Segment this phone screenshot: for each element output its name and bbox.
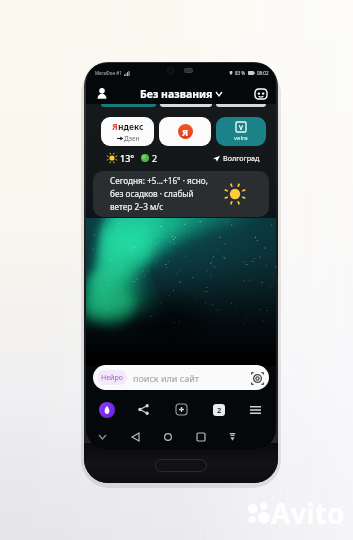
button[interactable]: Yandex: [159, 117, 211, 146]
staticText: МегаФон #1: [95, 70, 122, 76]
staticText: 2: [217, 405, 222, 415]
staticText: Сегодня: +5...+16° · ясно, без осадков ·…: [110, 175, 208, 213]
staticText: 83 %: [235, 70, 246, 76]
button[interactable]: Home: [160, 429, 175, 444]
button[interactable]: Visual search: [249, 370, 265, 386]
staticText: Волгоград: [223, 153, 260, 163]
button[interactable]: Сегодня: +5...+16° · ясно, без осадков ·…: [93, 171, 269, 217]
staticText: Нейро: [101, 373, 123, 383]
staticText: 08:02: [257, 70, 269, 76]
button[interactable]: Menu: [246, 400, 265, 419]
staticText: Без названия: [140, 87, 213, 101]
button[interactable]: Нейро: [93, 365, 269, 390]
button[interactable]: Collapse: [95, 429, 110, 444]
button[interactable]: Я: [101, 117, 154, 146]
staticText: Я: [112, 121, 118, 133]
button[interactable]: Alice assistant: [97, 400, 116, 419]
staticText: 13°: [120, 152, 135, 164]
button[interactable]: Incognito mode: [252, 85, 269, 102]
button[interactable]: Tabs: 2: [209, 400, 228, 419]
staticText: поиск или сайт: [133, 372, 199, 384]
button[interactable]: V: [216, 117, 266, 146]
button[interactable]: Recent apps: [193, 429, 208, 444]
button[interactable]: New tab: [172, 400, 191, 419]
staticText: Avito: [271, 494, 345, 532]
staticText: ндекс: [118, 121, 144, 133]
staticText: 2: [152, 152, 158, 164]
staticText: Дзен: [124, 134, 140, 143]
staticText: V: [239, 123, 243, 132]
staticText: velra: [234, 134, 248, 142]
button[interactable]: Profile: [93, 85, 110, 102]
button[interactable]: Share: [134, 400, 153, 419]
button[interactable]: Downloads: [225, 429, 240, 444]
button[interactable]: Без названия: [110, 87, 252, 101]
button[interactable]: Back: [128, 429, 143, 444]
staticText: Я: [182, 126, 189, 138]
